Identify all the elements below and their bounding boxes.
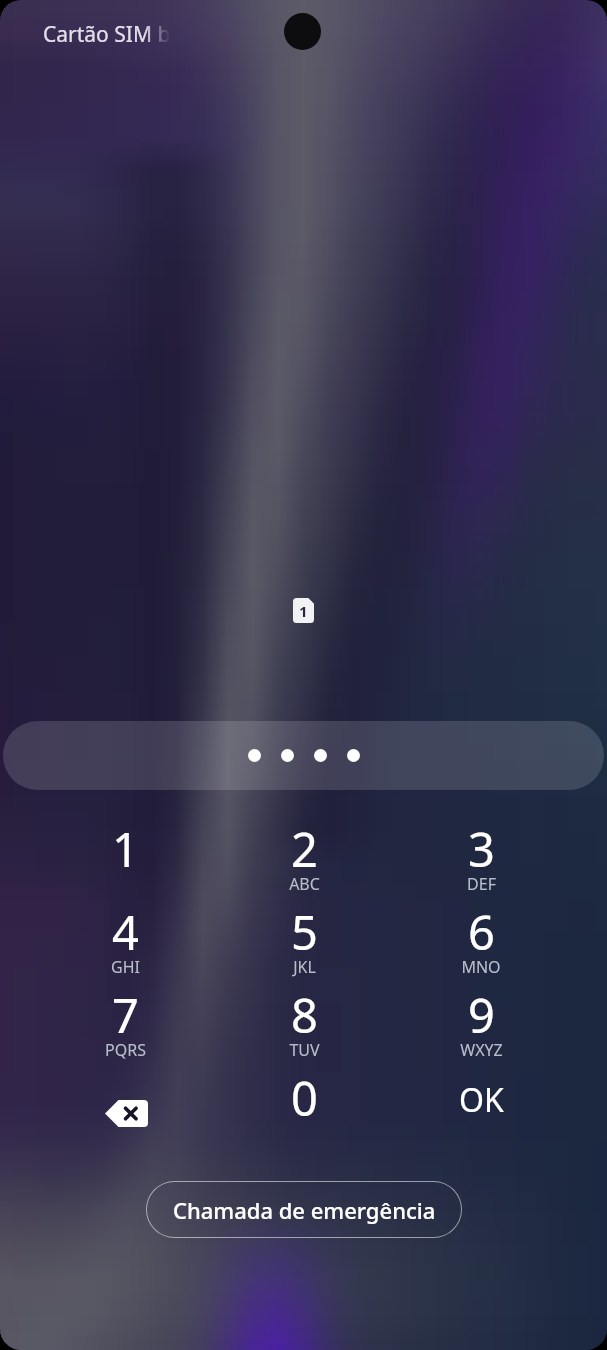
staticText: 2	[291, 817, 318, 881]
button[interactable]: 9	[423, 977, 539, 1057]
button[interactable]: 3	[423, 811, 539, 891]
button[interactable]: PIN entry	[3, 721, 604, 790]
button[interactable]: OK	[426, 1062, 536, 1138]
staticText: 1	[299, 601, 308, 621]
staticText: MNO	[461, 956, 501, 978]
staticText: JKL	[293, 956, 316, 978]
button[interactable]: 6	[423, 894, 539, 974]
staticText: 4	[112, 900, 139, 964]
staticText: 9	[468, 983, 495, 1047]
staticText: 3	[468, 817, 495, 881]
staticText: PQRS	[105, 1039, 146, 1061]
button[interactable]: 1	[67, 811, 183, 891]
staticText: ABC	[289, 873, 320, 895]
staticText: 8	[291, 983, 318, 1047]
staticText: DEF	[467, 873, 496, 895]
button[interactable]: 2	[246, 811, 362, 891]
button[interactable]: 0	[246, 1060, 362, 1140]
staticText: Cartão SIM bloqueado	[43, 20, 170, 49]
staticText: 6	[468, 900, 495, 964]
staticText: GHI	[111, 956, 140, 978]
staticText: TUV	[289, 1039, 320, 1061]
staticText: 5	[291, 900, 318, 964]
button[interactable]: 5	[246, 894, 362, 974]
button[interactable]: 4	[67, 894, 183, 974]
button[interactable]: 8	[246, 977, 362, 1057]
staticText: Chamada de emergência	[173, 1195, 436, 1225]
staticText: WXYZ	[460, 1039, 503, 1061]
button[interactable]: 7	[67, 977, 183, 1057]
staticText: 0	[291, 1066, 318, 1130]
button[interactable]: Backspace	[67, 1060, 183, 1140]
staticText: 7	[112, 983, 139, 1047]
staticText: 1	[112, 817, 139, 881]
staticText: OK	[459, 1078, 504, 1122]
button[interactable]: Chamada de emergência	[146, 1181, 462, 1238]
